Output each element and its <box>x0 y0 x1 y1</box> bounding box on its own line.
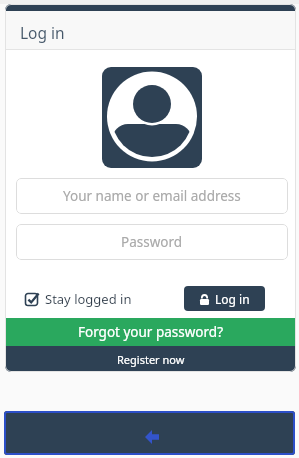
button[interactable]: Stay logged in <box>25 290 132 308</box>
staticText: Your name or email address <box>63 187 241 205</box>
staticText: Forgot your password? <box>78 323 224 341</box>
button[interactable]: Register now <box>5 346 296 372</box>
staticText: Log in <box>215 291 250 307</box>
staticText: Password <box>121 233 183 251</box>
staticText: Log in <box>20 22 65 43</box>
staticText: Register now <box>117 352 185 367</box>
button[interactable]: Forgot your password? <box>5 318 296 346</box>
button[interactable]: Log in <box>184 286 265 311</box>
button[interactable]: Your name or email address <box>16 178 288 214</box>
button[interactable]: Password <box>16 224 288 260</box>
staticText: Stay logged in <box>45 290 132 308</box>
button[interactable] <box>4 411 295 455</box>
